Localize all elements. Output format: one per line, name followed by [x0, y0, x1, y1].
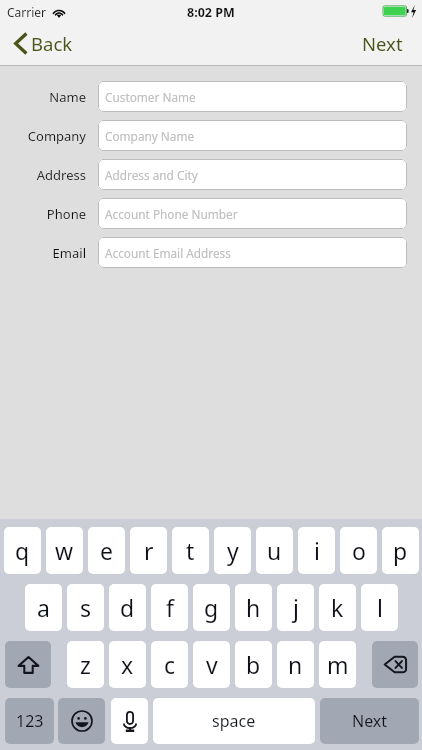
- staticText: h: [246, 592, 261, 623]
- button[interactable]: d: [109, 584, 146, 631]
- staticText: Account Email Address: [105, 245, 231, 261]
- staticText: Phone: [46, 205, 86, 223]
- button[interactable]: space: [153, 698, 315, 744]
- button[interactable]: g: [193, 584, 230, 631]
- staticText: Name: [49, 88, 86, 106]
- staticText: j: [293, 592, 299, 623]
- button[interactable]: c: [151, 641, 188, 688]
- staticText: Next: [352, 710, 388, 732]
- button[interactable]: Company Name: [98, 120, 407, 151]
- staticText: Account Phone Number: [105, 206, 238, 222]
- staticText: m: [327, 649, 349, 680]
- button[interactable]: 123: [5, 698, 54, 744]
- staticText: b: [246, 649, 261, 680]
- button[interactable]: b: [235, 641, 272, 688]
- button[interactable]: Address and City: [98, 159, 407, 190]
- staticText: c: [164, 649, 176, 680]
- button[interactable]: l: [361, 584, 398, 631]
- button[interactable]: t: [172, 527, 209, 574]
- staticText: Customer Name: [105, 89, 196, 105]
- staticText: Company: [27, 127, 86, 145]
- button[interactable]: w: [46, 527, 83, 574]
- staticText: Email: [52, 244, 86, 262]
- staticText: v: [206, 649, 218, 680]
- button[interactable]: m: [319, 641, 356, 688]
- staticText: u: [267, 535, 282, 566]
- staticText: Company Name: [105, 128, 195, 144]
- staticText: r: [144, 535, 154, 566]
- staticText: Back: [31, 31, 73, 56]
- staticText: z: [80, 649, 91, 680]
- button[interactable]: Dictation: [111, 698, 148, 744]
- staticText: x: [121, 649, 134, 680]
- button[interactable]: Back: [0, 29, 83, 62]
- button[interactable]: y: [214, 527, 251, 574]
- staticText: n: [288, 649, 303, 680]
- staticText: e: [100, 535, 113, 566]
- button[interactable]: i: [298, 527, 335, 574]
- button[interactable]: q: [4, 527, 41, 574]
- button[interactable]: Next: [348, 29, 422, 62]
- staticText: a: [37, 592, 50, 623]
- staticText: l: [377, 592, 383, 623]
- staticText: w: [55, 535, 74, 566]
- staticText: Next: [362, 31, 403, 56]
- staticText: Address: [36, 166, 86, 184]
- button[interactable]: k: [319, 584, 356, 631]
- button[interactable]: s: [67, 584, 104, 631]
- staticText: s: [80, 592, 92, 623]
- staticText: i: [314, 535, 320, 566]
- button[interactable]: f: [151, 584, 188, 631]
- button[interactable]: Backspace: [372, 641, 418, 688]
- staticText: Address and City: [105, 167, 198, 183]
- button[interactable]: n: [277, 641, 314, 688]
- button[interactable]: Shift: [5, 641, 51, 688]
- staticText: o: [352, 535, 366, 566]
- staticText: 8:02 PM: [187, 4, 235, 21]
- button[interactable]: u: [256, 527, 293, 574]
- button[interactable]: Emoji: [58, 698, 105, 744]
- button[interactable]: x: [109, 641, 146, 688]
- button[interactable]: h: [235, 584, 272, 631]
- button[interactable]: v: [193, 641, 230, 688]
- button[interactable]: z: [67, 641, 104, 688]
- button[interactable]: Next: [320, 698, 419, 744]
- staticText: q: [15, 535, 30, 566]
- button[interactable]: j: [277, 584, 314, 631]
- staticText: g: [204, 592, 219, 623]
- button[interactable]: r: [130, 527, 167, 574]
- button[interactable]: e: [88, 527, 125, 574]
- staticText: k: [331, 592, 344, 623]
- staticText: d: [120, 592, 135, 623]
- staticText: p: [393, 535, 408, 566]
- button[interactable]: Customer Name: [98, 81, 407, 112]
- staticText: 123: [16, 710, 44, 732]
- button[interactable]: a: [25, 584, 62, 631]
- staticText: space: [212, 710, 256, 732]
- button[interactable]: p: [382, 527, 419, 574]
- staticText: t: [186, 535, 195, 566]
- staticText: y: [227, 535, 239, 566]
- staticText: f: [166, 592, 174, 623]
- button[interactable]: Account Phone Number: [98, 198, 407, 229]
- staticText: Carrier: [7, 4, 47, 20]
- button[interactable]: Account Email Address: [98, 237, 407, 268]
- button[interactable]: o: [340, 527, 377, 574]
